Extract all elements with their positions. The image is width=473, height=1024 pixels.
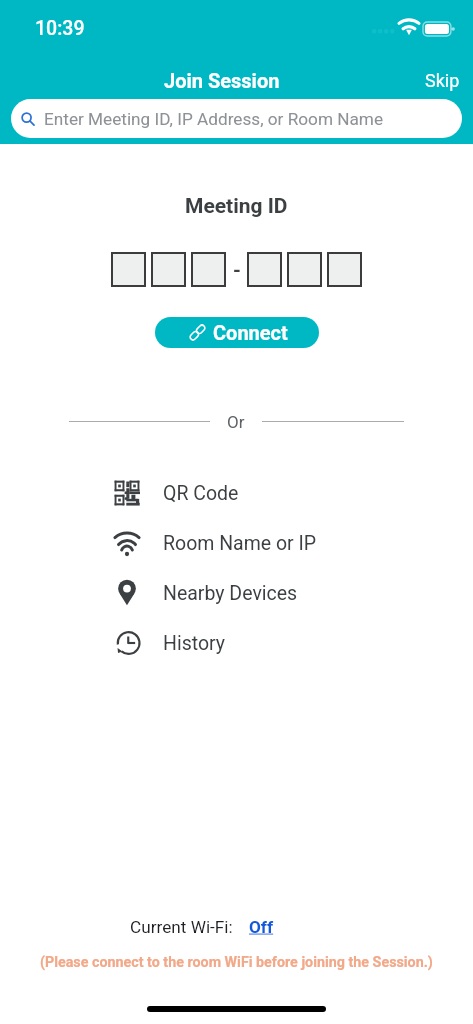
staticText: Enter Meeting ID, IP Address, or Room Na… bbox=[44, 109, 384, 129]
other: Search bbox=[21, 112, 35, 126]
button[interactable]: Connect bbox=[155, 317, 319, 348]
button[interactable]: Room Name or IP bbox=[0, 518, 473, 568]
staticText: Current Wi-Fi: bbox=[130, 917, 233, 937]
button[interactable]: Nearby Devices bbox=[0, 568, 473, 618]
button[interactable]: QR Code bbox=[0, 468, 473, 518]
staticText: Nearby Devices bbox=[163, 582, 298, 605]
staticText: (Please connect to the room WiFi before … bbox=[40, 954, 433, 971]
button[interactable]: Off bbox=[233, 915, 276, 939]
staticText: - bbox=[233, 258, 241, 281]
button[interactable]: Search bbox=[11, 99, 462, 138]
staticText: Connect bbox=[213, 321, 288, 344]
staticText: Room Name or IP bbox=[163, 532, 317, 555]
staticText: Join Session bbox=[164, 69, 280, 92]
staticText: QR Code bbox=[163, 482, 239, 505]
staticText: Skip bbox=[425, 70, 460, 91]
button[interactable]: History bbox=[0, 618, 473, 668]
staticText: Or bbox=[227, 412, 245, 430]
staticText: Off bbox=[249, 917, 274, 937]
staticText: 10:39 bbox=[35, 17, 85, 40]
button[interactable]: Skip bbox=[411, 65, 473, 96]
staticText: Meeting ID bbox=[185, 194, 288, 219]
staticText: History bbox=[163, 632, 226, 655]
